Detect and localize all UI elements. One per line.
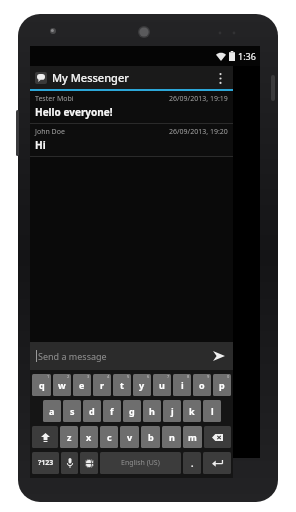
button[interactable]: k xyxy=(183,400,201,422)
button[interactable]: w xyxy=(53,374,71,396)
button[interactable]: Enter xyxy=(203,452,231,474)
staticText: 6 xyxy=(147,374,150,379)
staticText: Hi xyxy=(35,138,46,152)
staticText: 1 xyxy=(47,374,50,379)
staticText: English (US) xyxy=(121,458,160,468)
staticText: ?123 xyxy=(38,458,54,468)
staticText: Tester Mobi xyxy=(35,94,74,104)
staticText: Send a message xyxy=(38,350,107,362)
staticText: 0 xyxy=(227,374,230,379)
button[interactable]: e xyxy=(73,374,91,396)
staticText: f xyxy=(110,405,114,417)
staticText: s xyxy=(70,405,75,417)
staticText: g xyxy=(129,405,135,417)
button[interactable]: Shift xyxy=(32,426,58,448)
staticText: 8 xyxy=(187,374,190,379)
staticText: w xyxy=(58,379,66,391)
button[interactable]: t xyxy=(113,374,131,396)
staticText: r xyxy=(100,379,105,391)
staticText: j xyxy=(171,405,174,417)
staticText: t xyxy=(120,379,124,391)
button[interactable]: c xyxy=(100,426,118,448)
button[interactable]: l xyxy=(203,400,221,422)
staticText: v xyxy=(127,431,133,443)
staticText: b xyxy=(148,431,154,443)
button[interactable]: q xyxy=(32,374,51,396)
staticText: l xyxy=(211,405,214,417)
button[interactable]: ?123 xyxy=(32,452,59,474)
button[interactable]: i xyxy=(173,374,191,396)
button[interactable]: Backspace xyxy=(204,426,231,448)
staticText: o xyxy=(199,379,205,391)
button[interactable]: Send a message xyxy=(30,342,233,370)
button[interactable]: p xyxy=(213,374,231,396)
button[interactable]: h xyxy=(143,400,161,422)
button[interactable]: m xyxy=(183,426,202,448)
button[interactable]: Voice input xyxy=(61,452,78,474)
staticText: 3 xyxy=(87,374,90,379)
button[interactable]: g xyxy=(123,400,141,422)
staticText: 7 xyxy=(167,374,170,379)
button[interactable]: . xyxy=(183,452,201,474)
staticText: x xyxy=(86,431,92,443)
button[interactable]: Change language xyxy=(80,452,98,474)
staticText: d xyxy=(89,405,95,417)
staticText: 4 xyxy=(107,374,110,379)
button[interactable]: v xyxy=(120,426,139,448)
staticText: . xyxy=(191,457,194,469)
button[interactable]: s xyxy=(63,400,81,422)
button[interactable]: u xyxy=(153,374,171,396)
staticText: 26/09/2013, 19:20 xyxy=(169,127,228,137)
button[interactable]: f xyxy=(103,400,121,422)
staticText: e xyxy=(79,379,85,391)
staticText: m xyxy=(188,431,197,443)
staticText: John Doe xyxy=(35,127,65,137)
staticText: u xyxy=(159,379,165,391)
button[interactable]: My Messenger xyxy=(30,66,233,89)
staticText: k xyxy=(189,405,195,417)
staticText: h xyxy=(149,405,155,417)
button[interactable]: n xyxy=(162,426,181,448)
staticText: 9 xyxy=(207,374,210,379)
button[interactable]: z xyxy=(60,426,78,448)
staticText: c xyxy=(107,431,112,443)
staticText: n xyxy=(169,431,175,443)
staticText: 26/09/2013, 19:19 xyxy=(169,94,228,104)
button[interactable]: d xyxy=(83,400,101,422)
staticText: My Messenger xyxy=(52,70,129,85)
button[interactable]: o xyxy=(193,374,211,396)
button[interactable]: y xyxy=(133,374,151,396)
button[interactable]: r xyxy=(93,374,111,396)
staticText: y xyxy=(139,379,145,391)
button[interactable]: b xyxy=(141,426,160,448)
button[interactable]: Tester Mobi xyxy=(30,91,233,123)
button[interactable]: a xyxy=(43,400,61,422)
staticText: q xyxy=(39,379,45,391)
button[interactable]: English (US) xyxy=(100,452,181,474)
staticText: p xyxy=(219,379,225,391)
staticText: z xyxy=(67,431,72,443)
button[interactable]: j xyxy=(163,400,181,422)
staticText: 2 xyxy=(67,374,70,379)
button[interactable]: Send xyxy=(211,348,227,364)
button[interactable]: More options xyxy=(212,70,228,86)
staticText: 1:36 xyxy=(238,50,256,62)
button[interactable]: John Doe xyxy=(30,124,233,156)
button[interactable]: x xyxy=(80,426,98,448)
staticText: a xyxy=(49,405,55,417)
staticText: 5 xyxy=(127,374,130,379)
staticText: Hello everyone! xyxy=(35,105,113,119)
staticText: i xyxy=(181,379,184,391)
